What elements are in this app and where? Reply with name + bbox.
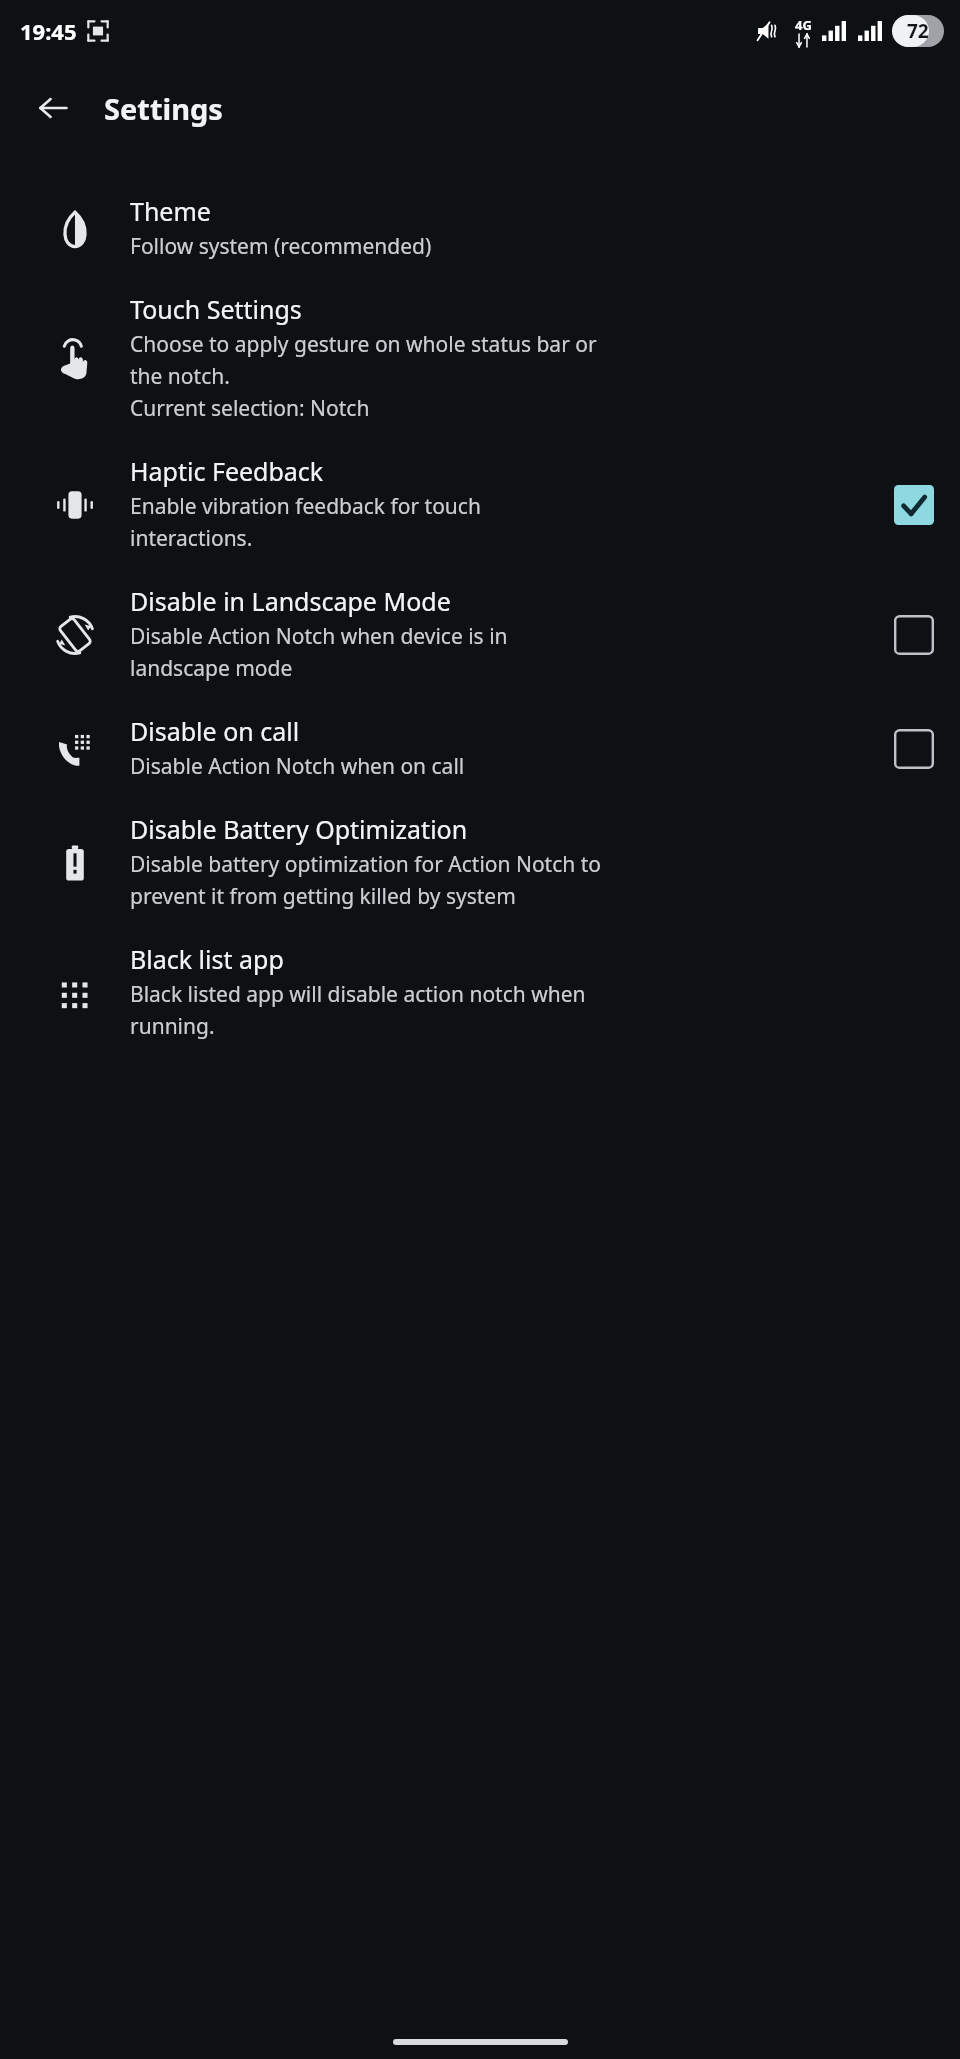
staticText: Disable on call <box>130 714 300 748</box>
staticText: landscape mode <box>130 654 293 683</box>
button[interactable]: Disable in Landscape Mode <box>0 570 960 700</box>
button[interactable]: Haptic Feedback <box>0 440 960 570</box>
staticText: Touch Settings <box>130 292 302 326</box>
button[interactable]: Disable Battery Optimization <box>0 798 960 928</box>
staticText: Disable Action Notch when on call <box>130 752 465 781</box>
staticText: Enable vibration feedback for touch <box>130 492 481 521</box>
staticText: the notch. <box>130 362 230 391</box>
button[interactable]: Back <box>24 79 82 137</box>
button[interactable]: Unchecked <box>890 725 938 773</box>
button[interactable]: Checked <box>890 481 938 529</box>
staticText: running. <box>130 1012 215 1041</box>
button[interactable]: Black list app <box>0 928 960 1058</box>
staticText: Current selection: Notch <box>130 394 370 423</box>
button[interactable]: Unchecked <box>890 611 938 659</box>
staticText: Disable Action Notch when device is in <box>130 622 508 651</box>
staticText: Disable Battery Optimization <box>130 812 468 846</box>
staticText: prevent it from getting killed by system <box>130 882 516 911</box>
staticText: 19:45 <box>20 16 77 46</box>
staticText: Choose to apply gesture on whole status … <box>130 330 597 359</box>
staticText: Black list app <box>130 942 284 976</box>
staticText: Disable battery optimization for Action … <box>130 850 601 879</box>
staticText: Disable in Landscape Mode <box>130 584 451 618</box>
button[interactable]: Disable on call <box>0 700 960 798</box>
staticText: Black listed app will disable action not… <box>130 980 586 1009</box>
staticText: Follow system (recommended) <box>130 232 432 261</box>
button[interactable]: Touch Settings <box>0 278 960 440</box>
staticText: 4G <box>795 16 812 34</box>
staticText: Settings <box>104 89 223 128</box>
staticText: interactions. <box>130 524 253 553</box>
staticText: Haptic Feedback <box>130 454 324 488</box>
staticText: 72 <box>907 18 929 44</box>
button[interactable]: Theme <box>0 180 960 278</box>
staticText: Theme <box>130 194 211 228</box>
